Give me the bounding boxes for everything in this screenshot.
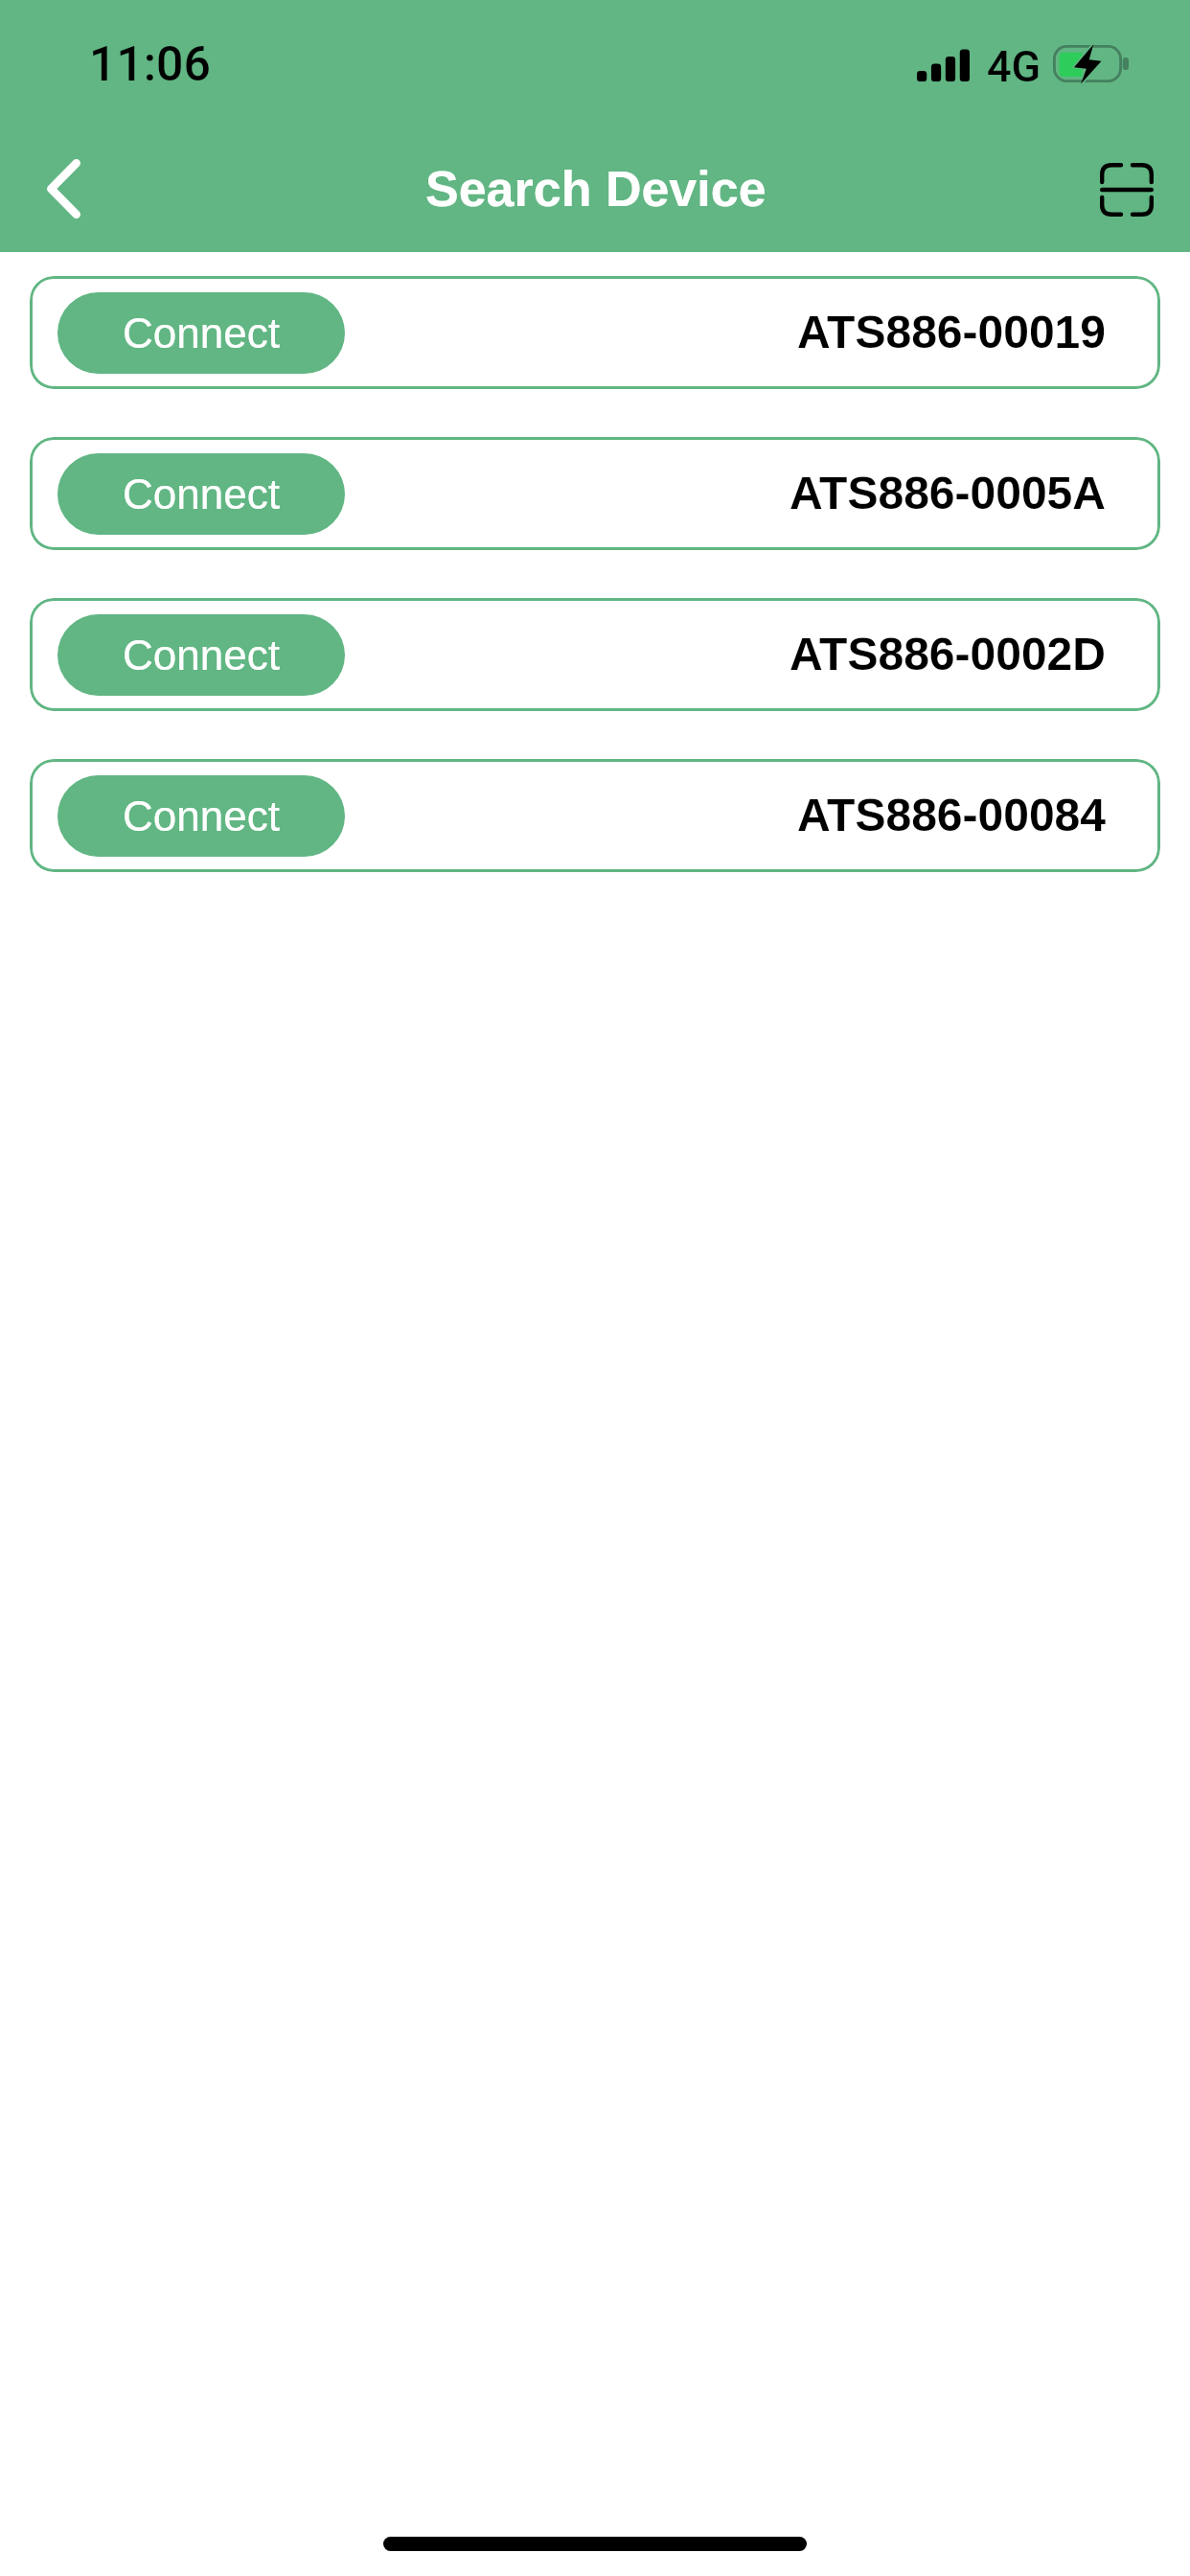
staticText: Connect [123,632,280,678]
staticText: ATS886-00019 [797,307,1106,358]
staticText: Search Device [425,161,767,217]
staticText: Connect [123,793,280,839]
button[interactable]: Connect [30,759,1160,872]
button[interactable]: Connect [30,437,1160,550]
staticText: 4G [987,41,1041,92]
button[interactable]: Scan QR code [1081,144,1173,236]
staticText: Connect [123,471,280,517]
button[interactable]: Connect [57,614,345,696]
button[interactable]: Back [4,146,125,232]
button[interactable]: Connect [57,453,345,535]
staticText: ATS886-0002D [790,629,1106,680]
staticText: Connect [123,310,280,356]
staticText: ATS886-00084 [797,790,1106,841]
button[interactable]: Connect [30,276,1160,389]
button[interactable]: Connect [30,598,1160,711]
staticText: 11:06 [89,36,211,93]
staticText: ATS886-0005A [790,468,1106,519]
button[interactable]: Connect [57,775,345,857]
button[interactable]: Connect [57,292,345,374]
